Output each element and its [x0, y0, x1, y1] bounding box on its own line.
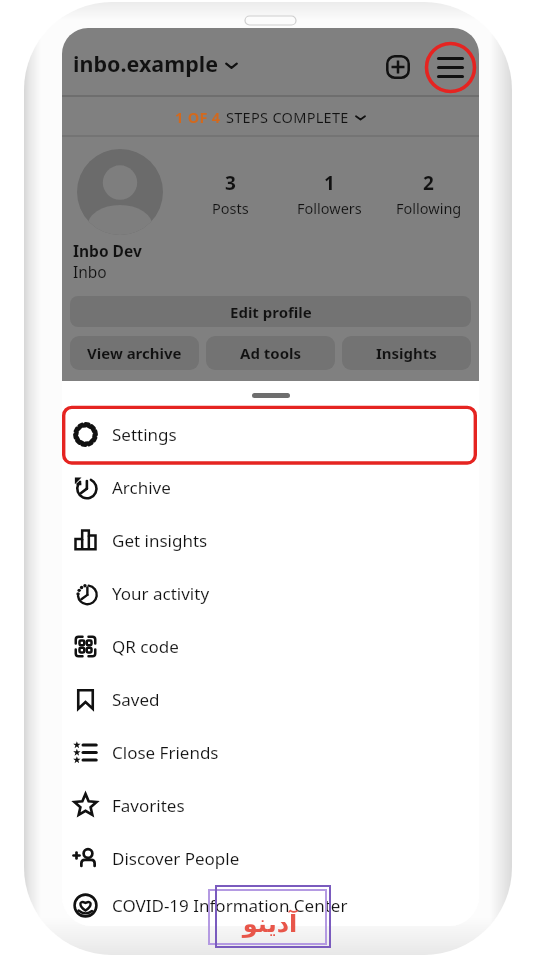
button[interactable]: QR code [62, 620, 479, 673]
button[interactable]: New post [379, 48, 417, 86]
staticText: inbo.example [73, 49, 218, 78]
button[interactable]: Favorites [62, 779, 479, 832]
staticText: Inbo Dev [73, 240, 142, 261]
staticText: Settings [112, 423, 177, 446]
staticText: 1 OF 4 [175, 107, 221, 127]
staticText: STEPS COMPLETE [226, 107, 349, 127]
button[interactable]: Archive [62, 461, 479, 514]
button[interactable]: Ad tools [206, 336, 335, 370]
button[interactable]: COVID-19 Information Center [62, 885, 479, 926]
staticText: Posts [212, 198, 249, 218]
staticText: Followers [297, 198, 362, 218]
staticText: 3 [225, 170, 236, 196]
staticText: Ad tools [240, 343, 302, 363]
staticText: Insights [376, 343, 437, 363]
button[interactable]: Open menu [425, 42, 476, 93]
staticText: Saved [112, 688, 160, 711]
button[interactable]: Your activity [62, 567, 479, 620]
staticText: Get insights [112, 529, 208, 552]
staticText: COVID-19 Information Center [112, 894, 348, 917]
staticText: Discover People [112, 847, 240, 870]
staticText: Close Friends [112, 741, 219, 764]
button[interactable]: Settings [62, 408, 479, 461]
button[interactable]: Edit profile [70, 296, 471, 327]
staticText: Inbo [73, 261, 107, 282]
staticText: Favorites [112, 794, 185, 817]
staticText: Edit profile [230, 302, 312, 322]
staticText: Archive [112, 476, 171, 499]
staticText: آدینو شاپ [219, 906, 321, 940]
button[interactable]: View archive [70, 336, 199, 370]
staticText: Your activity [112, 582, 210, 605]
staticText: QR code [112, 635, 179, 658]
button[interactable]: Get insights [62, 514, 479, 567]
button[interactable]: Discover People [62, 832, 479, 885]
button[interactable]: Insights [342, 336, 471, 370]
staticText: 1 [324, 170, 335, 196]
button[interactable]: Close Friends [62, 726, 479, 779]
button[interactable]: Saved [62, 673, 479, 726]
staticText: 2 [423, 170, 434, 196]
staticText: View archive [87, 343, 182, 363]
staticText: Following [396, 198, 462, 218]
